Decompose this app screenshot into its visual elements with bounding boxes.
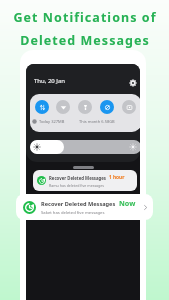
staticText: Get Notifications of bbox=[13, 9, 157, 26]
button[interactable]: Settings bbox=[128, 78, 137, 87]
button[interactable]: Quick setting bbox=[122, 100, 136, 114]
button[interactable]: Quick setting bbox=[100, 100, 114, 114]
staticText: Thu, 20 Jan bbox=[34, 77, 66, 85]
button[interactable]: Brightness bbox=[30, 140, 140, 154]
button[interactable]: Recover Deleted Messages bbox=[33, 170, 137, 191]
button[interactable]: Recover Deleted Messages bbox=[16, 194, 153, 220]
staticText: Saket has deleted five messages bbox=[41, 210, 105, 216]
staticText: This month 6.58GB bbox=[79, 119, 115, 124]
button[interactable]: Quick setting bbox=[56, 100, 70, 114]
staticText: Now bbox=[119, 198, 136, 208]
staticText: Recover Deleted Messages bbox=[41, 200, 116, 208]
staticText: Recover Deleted Messages bbox=[49, 175, 107, 181]
button[interactable]: Quick setting bbox=[78, 100, 92, 114]
staticText: Ramu has deleted five messages bbox=[49, 183, 105, 188]
staticText: 1 hour bbox=[109, 174, 125, 181]
staticText: Today 327MB bbox=[39, 119, 65, 124]
button[interactable]: Quick setting bbox=[35, 100, 49, 114]
staticText: Deleted Messages bbox=[20, 32, 150, 49]
